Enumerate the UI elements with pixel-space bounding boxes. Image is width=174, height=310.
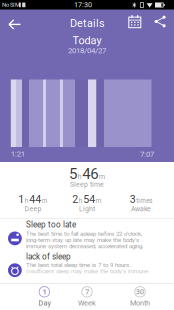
staticText: The best time to fall asleep before 22 o…	[26, 230, 142, 237]
staticText: 1:21	[11, 149, 25, 158]
staticText: Insufficient sleep may make the body's i…	[26, 267, 148, 275]
button[interactable]	[154, 15, 167, 28]
staticText: Week	[78, 299, 96, 307]
staticText: 46	[82, 165, 98, 183]
staticText: 17:30	[74, 1, 92, 9]
staticText: Month	[130, 299, 150, 307]
button[interactable]: 30	[118, 284, 162, 309]
staticText: Day	[38, 299, 50, 307]
staticText: Sleep time	[70, 180, 104, 188]
staticText: 44	[29, 193, 41, 205]
staticText: 7	[85, 287, 89, 296]
staticText: 2018/04/27	[68, 46, 106, 55]
button[interactable]	[7, 16, 23, 32]
staticText: h	[78, 172, 82, 181]
staticText: long-term stay up late may make the body…	[26, 236, 139, 243]
staticText: The best total sleep time is 7 to 9 hour…	[26, 261, 131, 268]
staticText: Details	[70, 17, 105, 30]
staticText: Deep	[24, 205, 41, 213]
button[interactable]: 7	[65, 284, 109, 309]
staticText: h	[25, 197, 29, 204]
staticText: Today	[72, 34, 101, 47]
staticText: 30	[136, 288, 144, 296]
staticText: Light	[79, 205, 95, 213]
staticText: 1	[18, 193, 24, 205]
staticText: Awake	[131, 205, 151, 213]
button[interactable]	[128, 14, 142, 28]
staticText: 3	[130, 193, 136, 205]
staticText: 5	[69, 165, 77, 183]
staticText: 2	[72, 193, 78, 205]
staticText: m	[42, 197, 48, 204]
staticText: 54	[83, 193, 95, 205]
staticText: Sleep too late	[26, 220, 76, 229]
staticText: 7:07	[140, 149, 154, 159]
staticText: m	[99, 172, 105, 181]
staticText: times	[136, 197, 152, 204]
staticText: m	[96, 197, 102, 204]
staticText: lack of sleep	[26, 252, 71, 261]
staticText: No SIM	[2, 1, 20, 8]
staticText: h	[79, 197, 83, 204]
staticText: 1	[42, 287, 46, 296]
button[interactable]: 1	[22, 284, 66, 309]
staticText: immune system decreased, accelerated agi…	[26, 243, 144, 250]
